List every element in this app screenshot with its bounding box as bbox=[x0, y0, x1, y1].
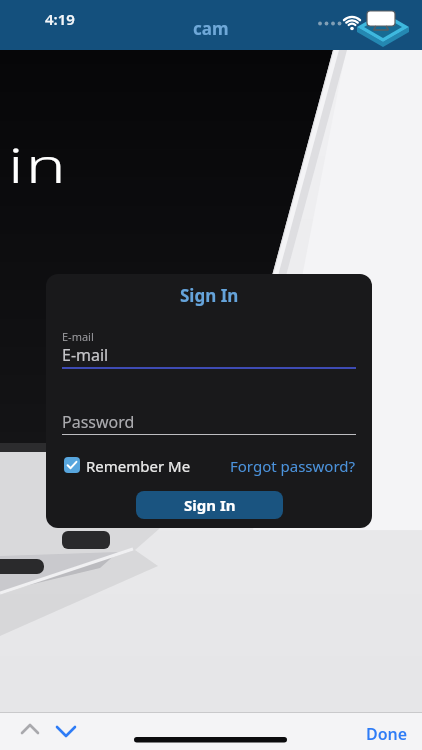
button[interactable]: Forgot password? bbox=[230, 456, 356, 476]
staticText: Sign In bbox=[180, 284, 239, 307]
button[interactable]: Done bbox=[366, 723, 408, 745]
button[interactable] bbox=[49, 718, 83, 742]
staticText: 4:19 bbox=[45, 9, 75, 29]
button[interactable] bbox=[14, 718, 46, 742]
staticText: in bbox=[8, 132, 68, 197]
staticText: Sign In bbox=[184, 495, 236, 515]
button[interactable] bbox=[64, 457, 80, 473]
staticText: E-mail bbox=[62, 329, 94, 344]
staticText: Remember Me bbox=[86, 456, 191, 476]
staticText: cam bbox=[193, 17, 229, 40]
button[interactable]: Sign In bbox=[136, 491, 283, 519]
button[interactable] bbox=[62, 406, 356, 436]
staticText: E-mail bbox=[62, 344, 109, 366]
staticText: Password bbox=[62, 411, 135, 433]
button[interactable] bbox=[62, 339, 356, 371]
